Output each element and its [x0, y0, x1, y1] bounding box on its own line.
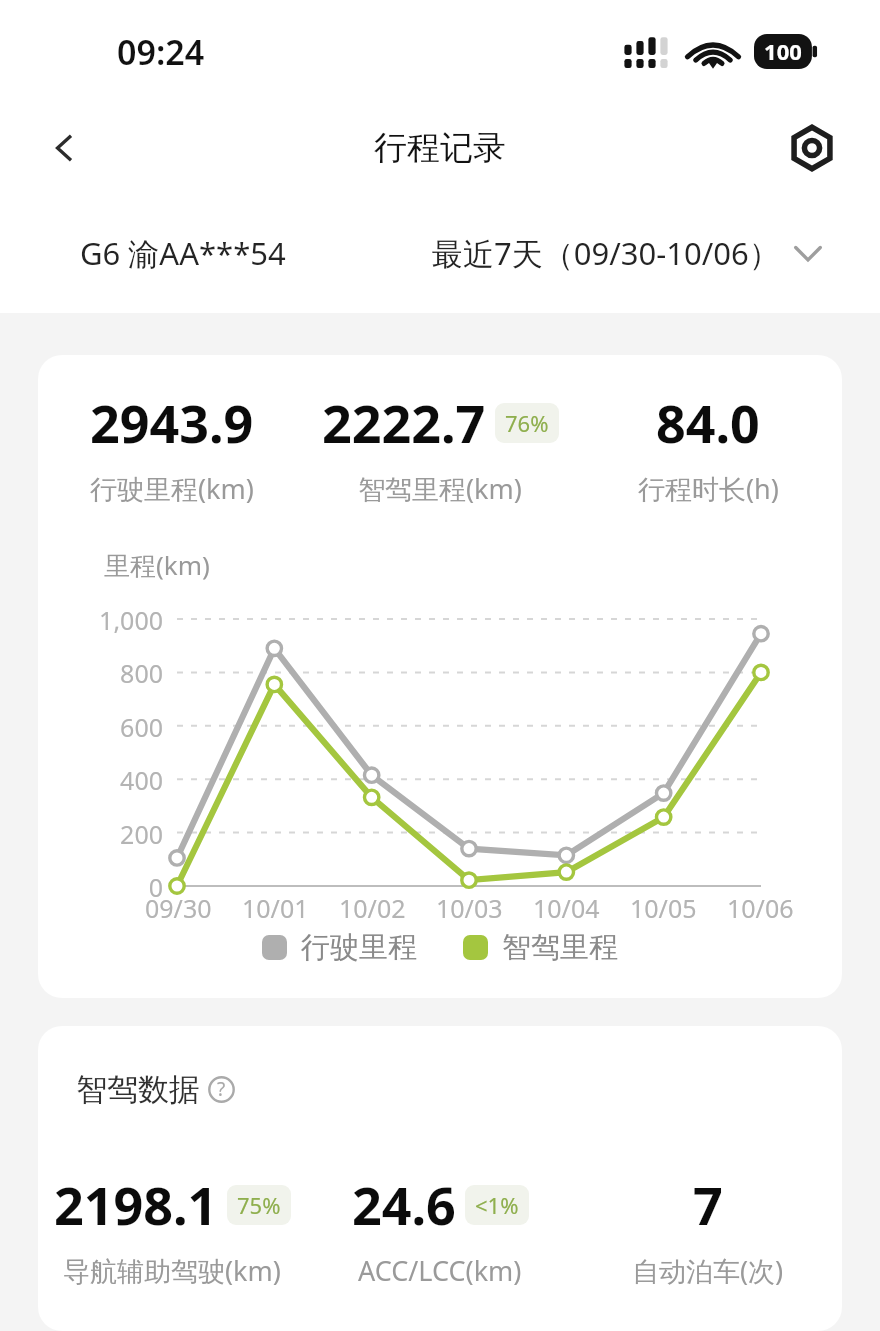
- button[interactable]: 智驾数据: [76, 1070, 235, 1109]
- staticText: 智驾数据: [76, 1070, 200, 1109]
- staticText: 智驾里程: [502, 929, 618, 966]
- staticText: 自动泊车(次): [632, 1252, 784, 1289]
- staticText: 200: [38, 817, 163, 851]
- staticText: 10/06: [727, 891, 794, 925]
- button[interactable]: 最近7天（09/30-10/06）: [432, 232, 822, 274]
- staticText: 最近7天（09/30-10/06）: [432, 232, 780, 274]
- staticText: 导航辅助驾驶(km): [63, 1252, 281, 1289]
- staticText: 800: [38, 656, 163, 690]
- button[interactable]: 84.0: [574, 387, 842, 507]
- staticText: 里程(km): [104, 547, 210, 583]
- staticText: 09:24: [117, 29, 205, 75]
- staticText: ?: [217, 1076, 226, 1102]
- staticText: <1%: [475, 1190, 519, 1220]
- staticText: 0: [38, 870, 163, 904]
- staticText: G6 渝AA***54: [80, 232, 286, 274]
- staticText: 10/04: [533, 891, 600, 925]
- staticText: 09/30: [145, 891, 212, 925]
- staticText: 75%: [237, 1190, 281, 1220]
- staticText: 10/03: [436, 891, 503, 925]
- button[interactable]: 行驶里程: [262, 929, 417, 966]
- staticText: 10/02: [339, 891, 406, 925]
- staticText: 2222.7: [322, 387, 486, 458]
- button[interactable]: 2222.7: [306, 387, 574, 507]
- staticText: 2943.9: [90, 387, 254, 458]
- staticText: 10/05: [630, 891, 697, 925]
- button[interactable]: Back: [36, 119, 94, 177]
- staticText: 10/01: [242, 891, 309, 925]
- staticText: 84.0: [656, 387, 760, 458]
- button[interactable]: 2198.1: [38, 1169, 306, 1289]
- staticText: 行程时长(h): [638, 470, 779, 507]
- staticText: 2198.1: [54, 1169, 218, 1240]
- button[interactable]: G6 渝AA***54: [80, 232, 286, 274]
- staticText: 行驶里程(km): [90, 470, 254, 507]
- staticText: 400: [38, 763, 163, 797]
- staticText: 76%: [505, 408, 549, 438]
- staticText: 7: [693, 1169, 723, 1240]
- button[interactable]: Settings: [784, 120, 840, 176]
- staticText: 100: [754, 36, 812, 66]
- staticText: ACC/LCC(km): [358, 1252, 522, 1289]
- staticText: 1,000: [38, 603, 163, 637]
- button[interactable]: 智驾里程: [463, 929, 618, 966]
- staticText: 行驶里程: [301, 929, 417, 966]
- button[interactable]: 24.6: [306, 1169, 574, 1289]
- staticText: 行程记录: [374, 127, 506, 169]
- button[interactable]: 2943.9: [38, 387, 306, 507]
- staticText: 600: [38, 710, 163, 744]
- staticText: 24.6: [352, 1169, 456, 1240]
- button[interactable]: 7: [574, 1169, 842, 1289]
- staticText: 智驾里程(km): [358, 470, 522, 507]
